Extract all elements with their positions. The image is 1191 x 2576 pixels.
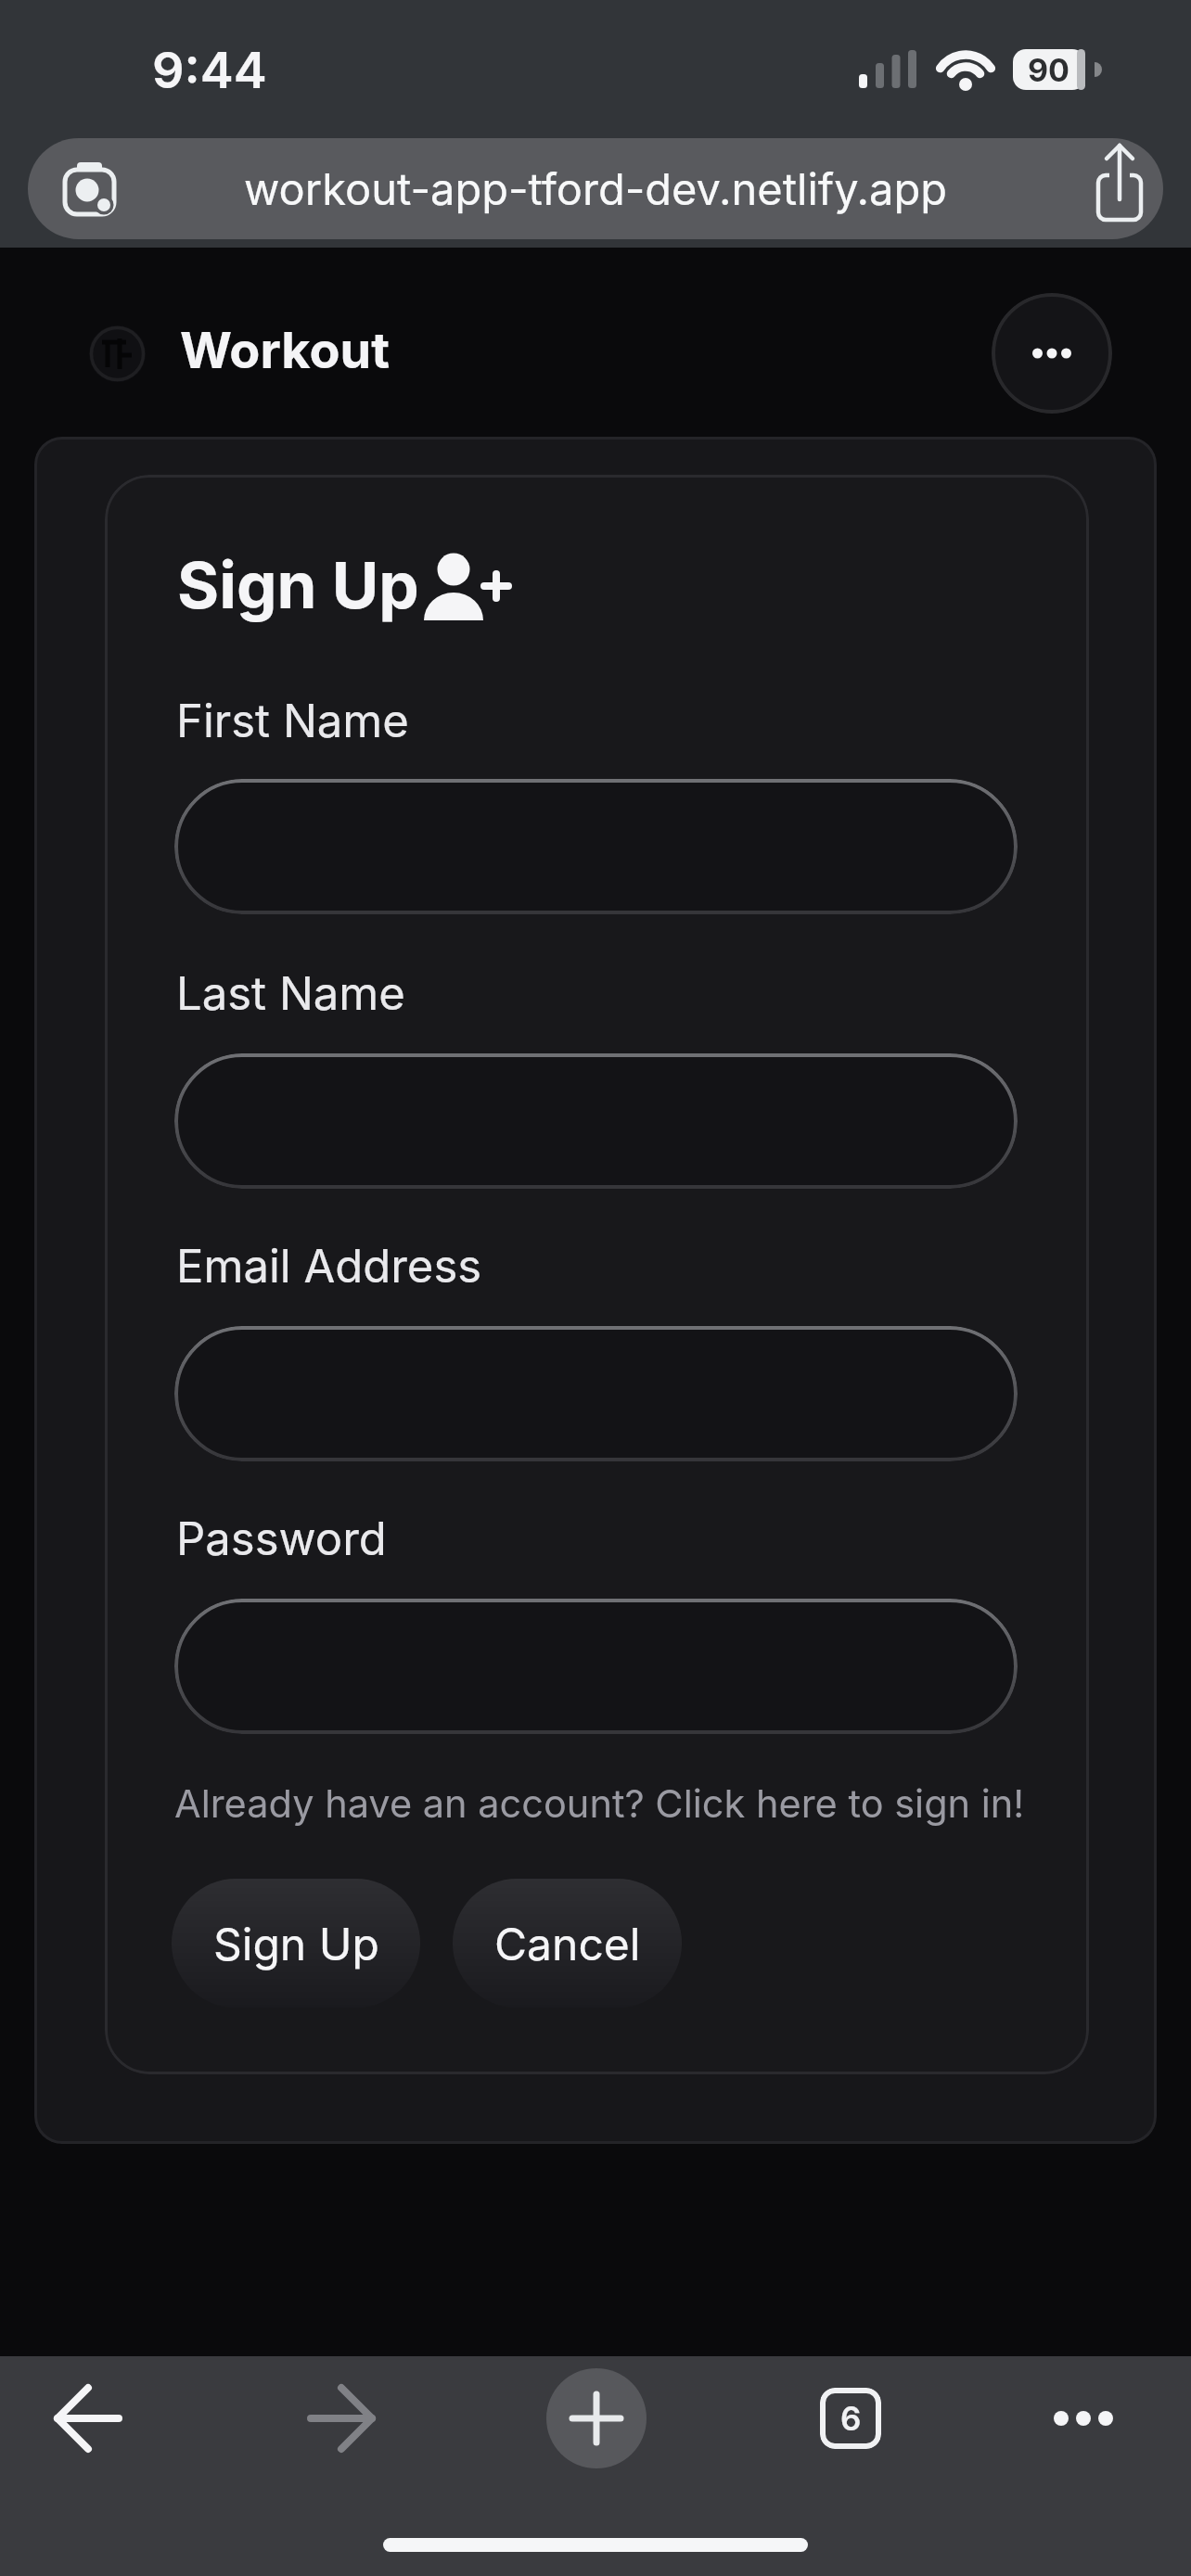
button[interactable]: 6 (820, 2388, 881, 2449)
staticText: Email Address (176, 1239, 482, 1294)
staticText: Password (176, 1511, 387, 1566)
button[interactable]: workout-app-tford-dev.netlify.app (28, 138, 1163, 239)
button[interactable]: Sign Up (172, 1879, 420, 2008)
button[interactable]: Already have an account? Click here to s… (174, 1771, 1102, 1830)
staticText: 90 (1028, 51, 1070, 89)
staticText: Workout (180, 320, 390, 380)
button[interactable] (546, 2368, 647, 2468)
staticText: First Name (176, 694, 409, 748)
button[interactable] (1042, 2388, 1125, 2449)
button[interactable] (44, 2377, 133, 2460)
staticText: workout-app-tford-dev.netlify.app (244, 162, 948, 215)
button[interactable] (297, 2377, 386, 2460)
button[interactable] (174, 1599, 1018, 1734)
staticText: Sign Up (177, 546, 419, 623)
button[interactable]: Cancel (453, 1879, 682, 2008)
button[interactable] (174, 1053, 1018, 1189)
staticText: Last Name (176, 966, 405, 1021)
button[interactable] (992, 293, 1112, 414)
staticText: Cancel (494, 1917, 641, 1970)
staticText: Sign Up (213, 1917, 379, 1970)
button[interactable] (174, 779, 1018, 914)
staticText: 9:44 (152, 40, 267, 100)
staticText: 6 (840, 2399, 862, 2438)
staticText: Already have an account? Click here to s… (174, 1780, 1025, 1827)
button[interactable] (174, 1326, 1018, 1461)
